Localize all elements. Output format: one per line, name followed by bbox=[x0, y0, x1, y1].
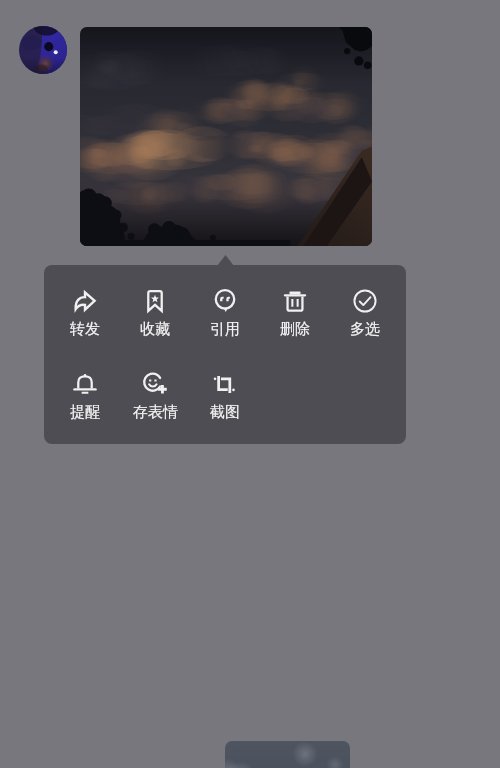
staticText: 删除 bbox=[280, 320, 310, 339]
button[interactable]: 多选 bbox=[330, 287, 400, 341]
button[interactable]: 删除 bbox=[260, 287, 330, 341]
staticText: 引用 bbox=[210, 320, 240, 339]
staticText: 截图 bbox=[210, 403, 240, 422]
staticText: 多选 bbox=[350, 320, 380, 339]
button[interactable]: Photo message bbox=[225, 741, 350, 768]
button[interactable]: 收藏 bbox=[120, 287, 190, 341]
button[interactable]: 转发 bbox=[50, 287, 120, 341]
button[interactable]: 截图 bbox=[190, 370, 260, 424]
button[interactable]: Avatar bbox=[19, 26, 67, 74]
button[interactable]: 提醒 bbox=[50, 370, 120, 424]
staticText: 存表情 bbox=[133, 403, 178, 422]
staticText: 提醒 bbox=[70, 403, 100, 422]
staticText: 收藏 bbox=[140, 320, 170, 339]
button[interactable]: 存表情 bbox=[120, 370, 190, 424]
button[interactable]: Photo bbox=[80, 27, 372, 246]
staticText: 转发 bbox=[70, 320, 100, 339]
button[interactable]: 引用 bbox=[190, 287, 260, 341]
